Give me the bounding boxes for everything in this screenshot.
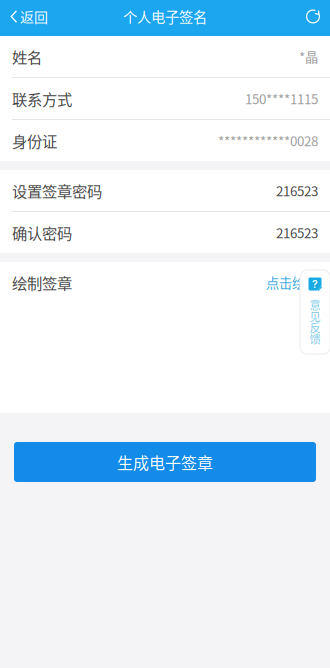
staticText: 绘制签章 (12, 271, 72, 294)
staticText: 点击绘制 (266, 273, 318, 292)
staticText: 反 (309, 319, 320, 335)
button[interactable]: 返回 (0, 0, 58, 36)
staticText: 联系方式 (12, 87, 72, 110)
staticText: 设置签章密码 (12, 179, 102, 202)
button[interactable]: 意见反馈 (300, 270, 330, 354)
staticText: 意 (309, 296, 320, 313)
staticText: ? (312, 277, 318, 290)
staticText: 216523 (276, 181, 318, 200)
staticText: 生成电子签章 (117, 450, 213, 474)
button[interactable]: 生成电子签章 (0, 442, 330, 482)
staticText: 返回 (20, 6, 48, 27)
staticText: 个人电子签名 (123, 6, 207, 27)
staticText: 身份证 (12, 129, 57, 152)
staticText: 150****1115 (245, 89, 318, 108)
staticText: 馈 (309, 330, 320, 347)
staticText: 姓名 (12, 45, 42, 68)
staticText: 确认密码 (12, 221, 72, 244)
staticText: 216523 (276, 223, 318, 242)
staticText: 见 (309, 308, 320, 324)
staticText: ************0028 (218, 131, 318, 150)
staticText: *晶 (299, 47, 318, 66)
button[interactable]: 刷新 (295, 0, 330, 36)
